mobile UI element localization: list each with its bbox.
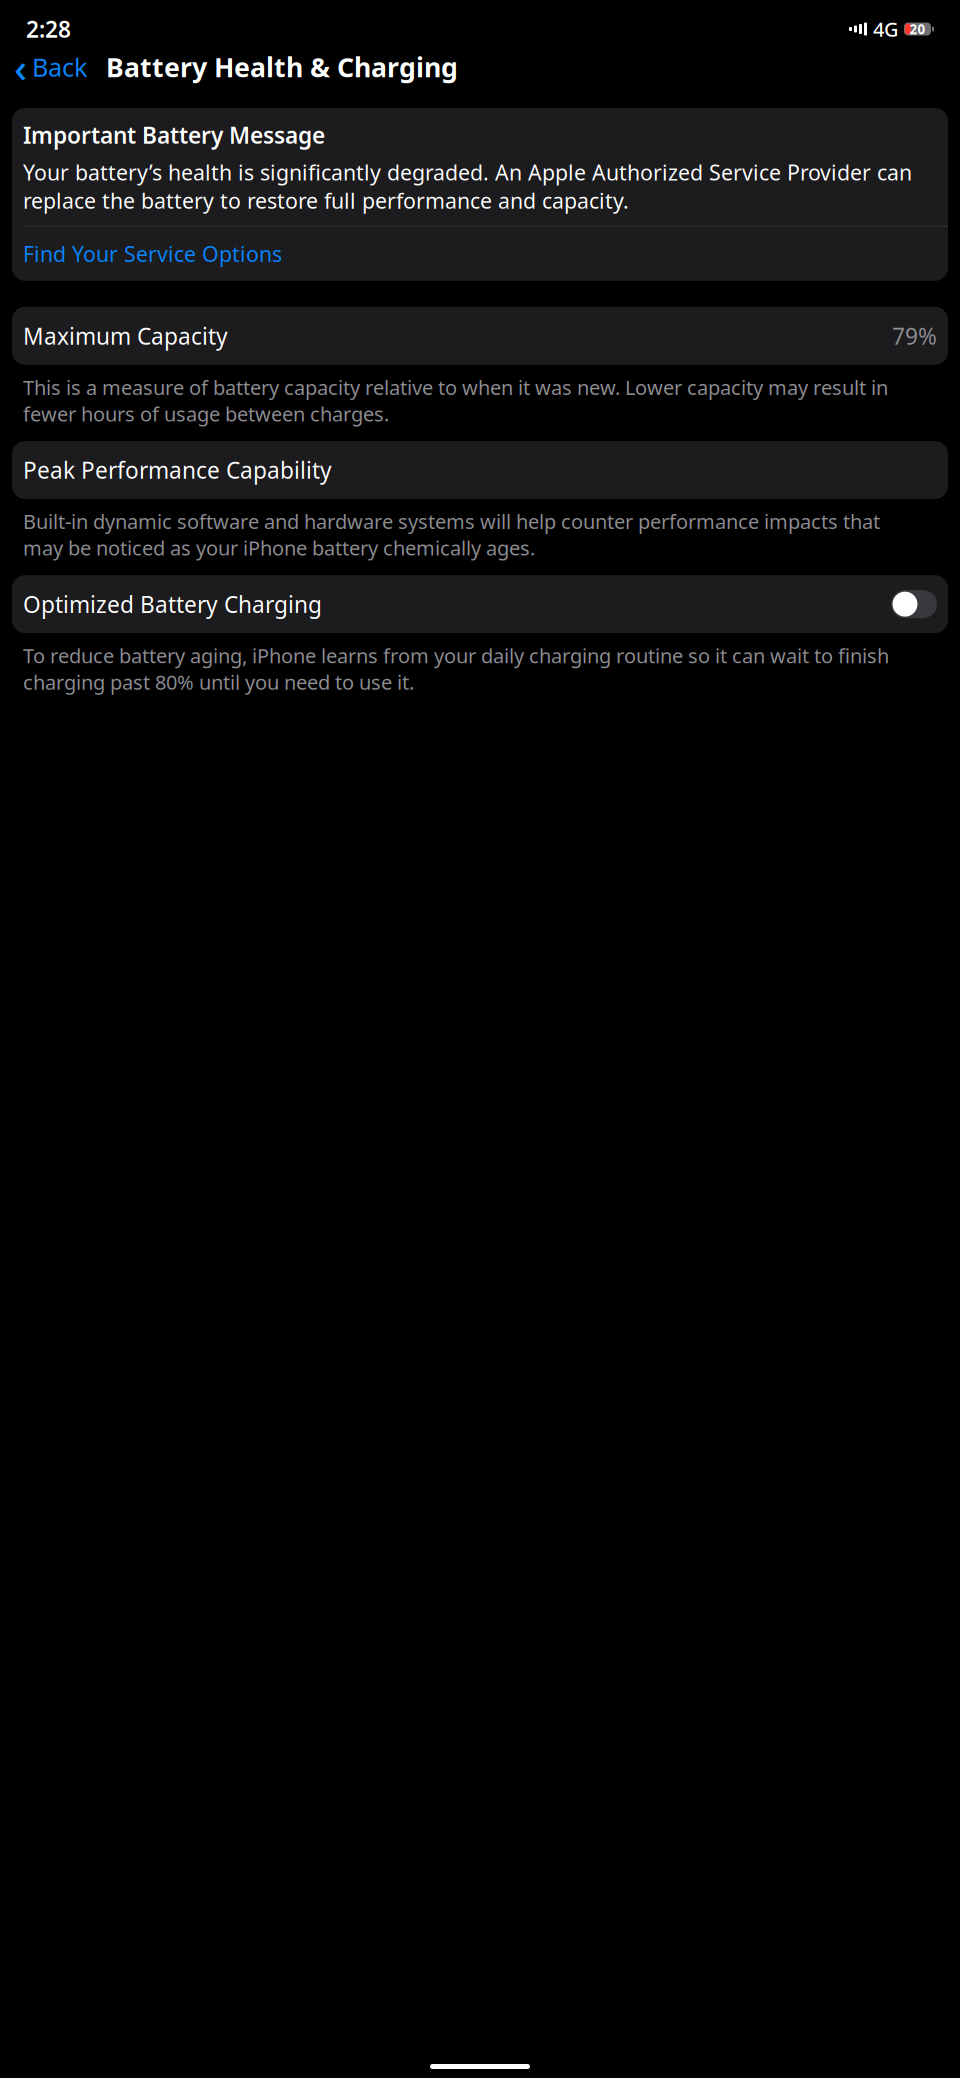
staticText: To reduce battery aging, iPhone learns f… bbox=[23, 642, 889, 695]
staticText: This is a measure of battery capacity re… bbox=[23, 374, 888, 427]
button[interactable]: ‹ bbox=[8, 36, 88, 97]
button[interactable]: Find Your Service Options bbox=[12, 227, 948, 281]
staticText: Optimized Battery Charging bbox=[23, 589, 322, 619]
button[interactable]: Optimized Battery Charging toggle bbox=[891, 589, 937, 619]
staticText: Peak Performance Capability bbox=[23, 455, 332, 485]
staticText: Your battery’s health is significantly d… bbox=[23, 158, 912, 215]
staticText: 20 bbox=[909, 20, 925, 38]
staticText: Find Your Service Options bbox=[23, 240, 282, 268]
staticText: 2:28 bbox=[26, 14, 71, 44]
button[interactable]: Peak Performance Capability bbox=[12, 441, 948, 499]
staticText: ‹ bbox=[14, 40, 27, 93]
staticText: 4G bbox=[873, 16, 899, 42]
staticText: Built-in dynamic software and hardware s… bbox=[23, 508, 880, 561]
staticText: Back bbox=[32, 50, 88, 84]
staticText: Battery Health & Charging bbox=[106, 49, 458, 85]
staticText: 79% bbox=[892, 321, 937, 351]
staticText: Important Battery Message bbox=[23, 120, 325, 150]
staticText: Maximum Capacity bbox=[23, 321, 228, 351]
